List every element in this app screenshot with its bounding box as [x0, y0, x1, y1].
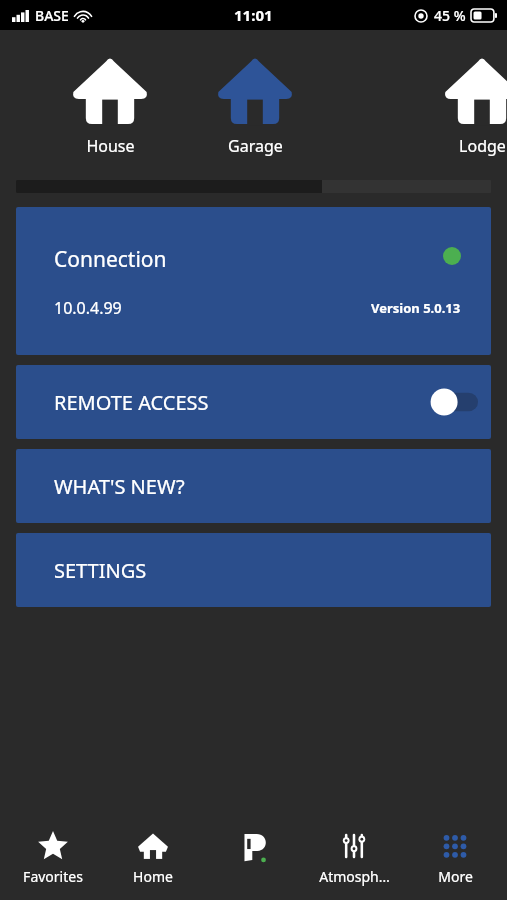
button[interactable]: Dashboard app logo: [206, 824, 302, 891]
button[interactable]: SETTINGS: [16, 533, 491, 607]
staticText: REMOTE ACCESS: [54, 389, 209, 416]
staticText: SETTINGS: [54, 557, 147, 584]
button[interactable]: Home: [105, 823, 201, 892]
staticText: Version 5.0.13: [371, 299, 461, 317]
staticText: Atmosph…: [319, 867, 390, 886]
staticText: Garage: [228, 135, 283, 157]
button[interactable]: Garage: [207, 50, 303, 161]
button[interactable]: Lodge: [434, 50, 507, 161]
staticText: Connection: [54, 245, 167, 274]
button[interactable]: Remote access toggle: [430, 387, 478, 417]
button[interactable]: House: [62, 50, 158, 161]
staticText: More: [438, 867, 473, 886]
staticText: 10.0.4.99: [54, 297, 122, 319]
button[interactable]: Atmosph…: [306, 823, 402, 892]
staticText: WHAT'S NEW?: [54, 473, 185, 500]
staticText: Lodge: [459, 135, 506, 157]
button[interactable]: More: [407, 823, 503, 892]
staticText: BASE: [35, 6, 69, 25]
button[interactable]: REMOTE ACCESS: [16, 365, 491, 439]
staticText: Favorites: [23, 867, 83, 886]
staticText: Home: [133, 867, 173, 886]
staticText: 11:01: [234, 5, 273, 25]
staticText: House: [86, 135, 135, 157]
button[interactable]: WHAT'S NEW?: [16, 449, 491, 523]
button[interactable]: Connection: [16, 207, 491, 355]
staticText: 45 %: [434, 6, 466, 25]
button[interactable]: Favorites: [5, 823, 101, 892]
